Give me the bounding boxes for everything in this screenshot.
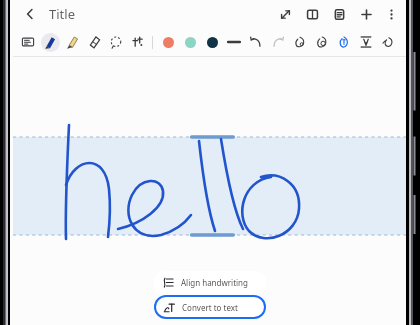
button[interactable]: Convert to text bbox=[156, 297, 264, 317]
button[interactable]: List view bbox=[330, 5, 348, 23]
staticText: Convert to text bbox=[182, 302, 238, 313]
button[interactable]: Select bbox=[377, 31, 399, 53]
button[interactable]: Stroke width bbox=[223, 31, 245, 53]
button[interactable]: Add bbox=[357, 5, 375, 23]
button[interactable]: Redo bbox=[267, 31, 289, 53]
button[interactable]: Align handwriting bbox=[355, 31, 377, 53]
button[interactable]: Convert to text bbox=[333, 31, 355, 53]
button[interactable]: Convert shape bbox=[311, 31, 333, 53]
button[interactable]: Dark colour bbox=[201, 31, 223, 53]
button[interactable]: Book view bbox=[303, 5, 321, 23]
button[interactable]: Back bbox=[19, 3, 41, 25]
button[interactable]: Undo bbox=[245, 31, 267, 53]
button[interactable]: Expand bbox=[276, 5, 294, 23]
button[interactable]: Shape recognition bbox=[289, 31, 311, 53]
button[interactable]: Text box bbox=[17, 31, 39, 53]
button[interactable]: Align handwriting bbox=[154, 271, 266, 293]
staticText: Title bbox=[49, 5, 75, 23]
button[interactable]: Lasso select bbox=[105, 31, 127, 53]
button[interactable]: Eraser bbox=[83, 31, 105, 53]
button[interactable]: Highlighter bbox=[61, 31, 83, 53]
button[interactable]: Mint colour bbox=[179, 31, 201, 53]
button[interactable]: More options bbox=[382, 5, 400, 23]
button[interactable]: Salmon colour bbox=[157, 31, 179, 53]
button[interactable]: Pen bbox=[39, 31, 61, 53]
staticText: Align handwriting bbox=[181, 277, 248, 288]
button[interactable]: Sticker bbox=[127, 31, 149, 53]
